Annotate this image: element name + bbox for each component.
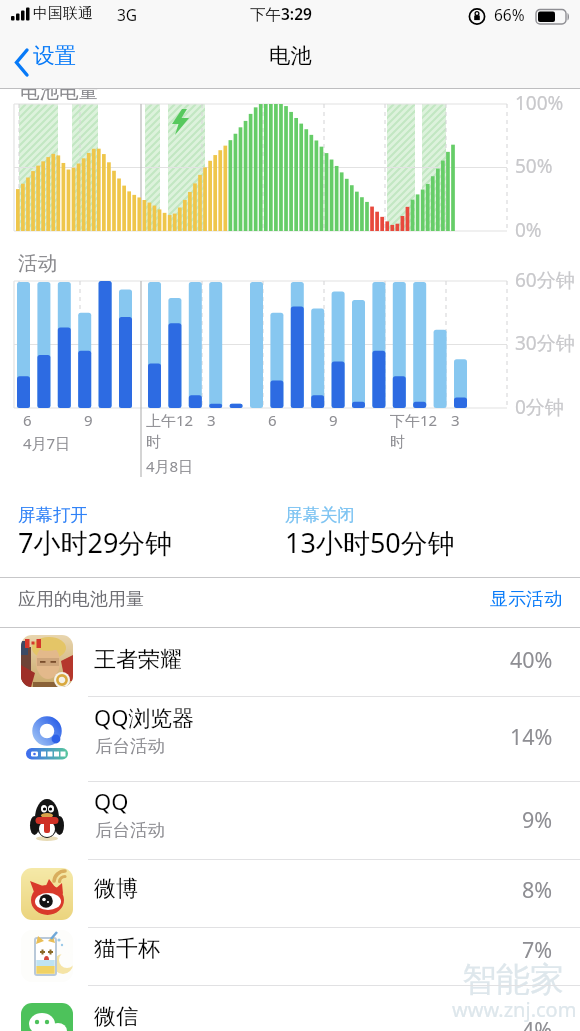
staticText: 上午12 — [146, 410, 194, 430]
staticText: 下午12 — [390, 410, 438, 430]
staticText: 屏幕关闭 — [285, 504, 355, 526]
staticText: 100% — [515, 90, 564, 116]
staticText: 活动 — [18, 251, 57, 276]
staticText: 后台活动 — [95, 735, 165, 757]
staticText: 3 — [207, 410, 216, 430]
button[interactable] — [0, 859, 580, 927]
staticText: 9 — [329, 410, 338, 430]
staticText: QQ浏览器 — [94, 702, 195, 732]
staticText: 13小时50分钟 — [285, 524, 455, 561]
staticText: 30分钟 — [515, 330, 575, 356]
staticText: 电池电量 — [20, 79, 98, 104]
staticText: 9% — [522, 805, 553, 834]
staticText: 7% — [522, 935, 553, 964]
button[interactable] — [0, 627, 580, 696]
staticText: 猫千杯 — [94, 935, 160, 963]
staticText: 微博 — [94, 875, 138, 903]
staticText: 屏幕打开 — [18, 504, 88, 526]
button[interactable] — [0, 927, 580, 985]
staticText: 王者荣耀 — [94, 646, 182, 674]
staticText: 66% — [494, 4, 525, 25]
staticText: 7小时29分钟 — [18, 524, 173, 561]
staticText: 设置 — [33, 42, 76, 69]
staticText: 0分钟 — [515, 394, 564, 420]
staticText: 6 — [268, 410, 277, 430]
staticText: www.znj.com — [452, 996, 577, 1023]
button[interactable]: 显示活动 — [342, 588, 562, 611]
button[interactable] — [0, 985, 580, 1031]
staticText: 40% — [510, 645, 553, 674]
staticText: 8% — [522, 875, 553, 904]
staticText: 4月7日 — [23, 433, 71, 453]
staticText: 时 — [390, 433, 405, 452]
staticText: 60分钟 — [515, 267, 575, 293]
staticText: 50% — [515, 153, 553, 179]
staticText: 3 — [451, 410, 460, 430]
staticText: 智能家 — [462, 958, 564, 1001]
staticText: 应用的电池用量 — [18, 588, 144, 611]
staticText: 显示活动 — [490, 588, 562, 611]
staticText: 微信 — [94, 1003, 138, 1031]
button[interactable] — [10, 44, 100, 84]
staticText: 后台活动 — [95, 819, 165, 841]
staticText: 14% — [510, 722, 553, 751]
staticText: 4% — [522, 1015, 553, 1031]
button[interactable] — [0, 781, 580, 859]
staticText: 0% — [515, 217, 542, 243]
staticText: 4月8日 — [146, 456, 194, 476]
staticText: QQ — [94, 786, 129, 816]
staticText: 下午3:29 — [250, 3, 312, 24]
staticText: 3G — [117, 4, 138, 25]
staticText: 中国联通 — [33, 4, 93, 23]
staticText: 9 — [84, 410, 93, 430]
staticText: 时 — [146, 433, 161, 452]
button[interactable] — [0, 696, 580, 781]
staticText: 电池 — [269, 42, 312, 69]
staticText: 6 — [23, 410, 32, 430]
